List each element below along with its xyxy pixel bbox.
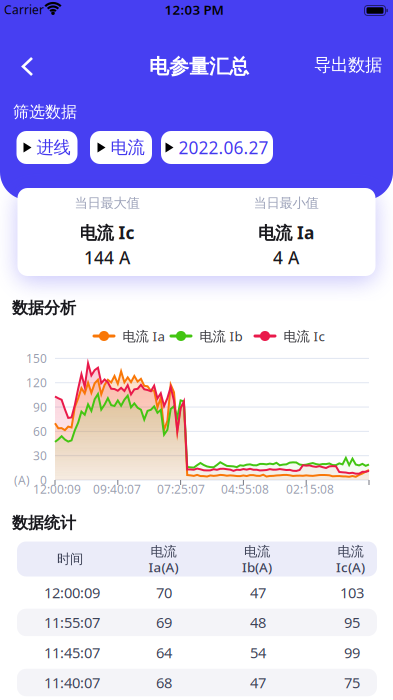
staticText: 30 bbox=[33, 448, 47, 464]
staticText: 69 bbox=[156, 613, 172, 632]
staticText: 07:25:07 bbox=[157, 481, 205, 497]
staticText: (A) bbox=[14, 472, 30, 488]
button[interactable]: 电流 Ic bbox=[253, 327, 324, 345]
staticText: 48 bbox=[250, 613, 266, 632]
staticText: Ib(A) bbox=[242, 558, 272, 576]
staticText: 68 bbox=[156, 673, 172, 692]
button[interactable]: 2022.06.27 bbox=[161, 131, 273, 164]
staticText: 47 bbox=[250, 673, 266, 692]
staticText: 电流 bbox=[110, 137, 144, 158]
staticText: 电流 bbox=[150, 543, 176, 560]
staticText: 当日最小值 bbox=[253, 195, 318, 211]
button[interactable]: 电流 Ia bbox=[92, 327, 164, 345]
staticText: 75 bbox=[344, 673, 360, 692]
staticText: 电参量汇总 bbox=[149, 54, 249, 79]
staticText: 0 bbox=[40, 472, 47, 488]
staticText: 09:40:07 bbox=[93, 481, 141, 497]
staticText: 120 bbox=[26, 375, 47, 391]
staticText: 2022.06.27 bbox=[178, 136, 268, 159]
button[interactable]: 进线 bbox=[16, 131, 77, 164]
staticText: 144 A bbox=[84, 246, 130, 269]
staticText: 电流 Ia bbox=[122, 327, 164, 345]
button[interactable]: 导出数据 bbox=[314, 54, 382, 76]
staticText: Carrier bbox=[4, 1, 44, 17]
staticText: 150 bbox=[26, 350, 47, 366]
staticText: 时间 bbox=[57, 551, 83, 567]
button[interactable]: 电流 bbox=[90, 131, 152, 164]
staticText: 54 bbox=[250, 643, 266, 662]
staticText: 4 A bbox=[273, 246, 299, 269]
staticText: 11:45:07 bbox=[44, 643, 100, 662]
staticText: 12:00:09 bbox=[33, 481, 81, 497]
staticText: 电流 Ib bbox=[199, 327, 242, 345]
staticText: 02:15:08 bbox=[286, 481, 334, 497]
staticText: Ia(A) bbox=[148, 558, 178, 576]
staticText: 电流 bbox=[337, 543, 363, 560]
staticText: 99 bbox=[344, 643, 360, 662]
staticText: 103 bbox=[340, 583, 364, 602]
staticText: 95 bbox=[344, 613, 360, 632]
staticText: 进线 bbox=[36, 137, 70, 158]
staticText: 47 bbox=[250, 583, 266, 602]
staticText: 电流 bbox=[244, 543, 270, 560]
button[interactable]: 电流 Ib bbox=[169, 327, 242, 345]
staticText: 11:55:07 bbox=[44, 613, 100, 632]
staticText: 70 bbox=[156, 583, 172, 602]
staticText: 电流 Ic bbox=[79, 221, 134, 244]
staticText: 04:55:08 bbox=[221, 481, 269, 497]
staticText: 数据分析 bbox=[12, 298, 76, 318]
staticText: 筛选数据 bbox=[13, 102, 77, 122]
staticText: 12:00:09 bbox=[44, 583, 100, 602]
staticText: 11:40:07 bbox=[44, 673, 100, 692]
staticText: 60 bbox=[33, 423, 47, 439]
staticText: 数据统计 bbox=[12, 513, 76, 533]
staticText: 电流 Ic bbox=[283, 327, 324, 345]
staticText: 导出数据 bbox=[314, 54, 382, 76]
staticText: 当日最大值 bbox=[74, 195, 139, 211]
staticText: 12:03 PM bbox=[164, 1, 223, 18]
staticText: Ic(A) bbox=[336, 558, 365, 576]
staticText: 电流 Ia bbox=[258, 221, 314, 244]
staticText: 90 bbox=[33, 399, 47, 415]
staticText: 64 bbox=[156, 643, 172, 662]
button[interactable]: Back bbox=[13, 48, 42, 85]
